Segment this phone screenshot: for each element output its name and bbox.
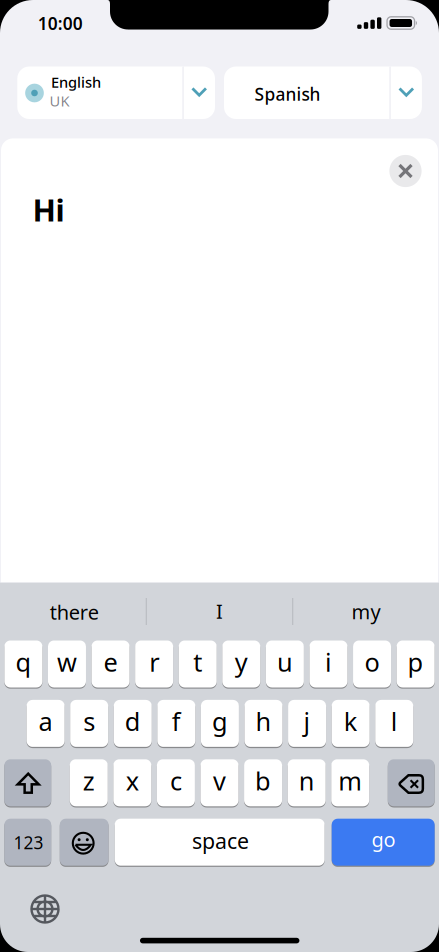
- staticText: my: [351, 598, 380, 625]
- button[interactable]: English: [0, 0, 439, 952]
- staticText: space: [192, 826, 249, 855]
- button[interactable]: d: [0, 0, 439, 952]
- staticText: z: [83, 764, 95, 797]
- staticText: h: [255, 704, 271, 738]
- button[interactable]: x: [0, 0, 439, 952]
- staticText: a: [39, 704, 53, 738]
- button[interactable]: w: [0, 0, 439, 952]
- staticText: t: [193, 645, 202, 679]
- staticText: p: [408, 645, 424, 679]
- staticText: b: [255, 764, 271, 797]
- staticText: w: [57, 645, 77, 679]
- staticText: d: [125, 704, 141, 738]
- button[interactable]: go: [0, 0, 439, 952]
- button[interactable]: g: [0, 0, 439, 952]
- staticText: q: [15, 645, 31, 679]
- button[interactable]: there: [0, 0, 439, 952]
- staticText: English: [51, 72, 101, 92]
- button[interactable]: 123: [0, 0, 439, 952]
- button[interactable]: e: [0, 0, 439, 952]
- button[interactable]: o: [0, 0, 439, 952]
- staticText: y: [235, 645, 248, 679]
- button[interactable]: h: [0, 0, 439, 952]
- button[interactable]: s: [0, 0, 439, 952]
- button[interactable]: c: [0, 0, 439, 952]
- staticText: o: [364, 645, 379, 679]
- button[interactable]: l: [0, 0, 439, 952]
- button[interactable]: Switch keyboard: [0, 0, 439, 952]
- staticText: UK: [49, 91, 69, 110]
- staticText: x: [126, 764, 139, 797]
- staticText: m: [338, 764, 362, 797]
- button[interactable]: u: [0, 0, 439, 952]
- staticText: u: [277, 645, 293, 679]
- staticText: go: [371, 826, 395, 853]
- button[interactable]: my: [0, 0, 439, 952]
- staticText: l: [391, 704, 398, 738]
- staticText: k: [344, 704, 358, 738]
- button[interactable]: I: [0, 0, 439, 952]
- button[interactable]: n: [0, 0, 439, 952]
- button[interactable]: Clear text: [0, 0, 439, 952]
- staticText: n: [299, 764, 315, 797]
- staticText: e: [104, 645, 118, 679]
- button[interactable]: y: [0, 0, 439, 952]
- button[interactable]: j: [0, 0, 439, 952]
- button[interactable]: z: [0, 0, 439, 952]
- button[interactable]: a: [0, 0, 439, 952]
- staticText: j: [304, 704, 311, 738]
- staticText: Hi: [32, 189, 64, 230]
- staticText: r: [149, 645, 159, 679]
- button[interactable]: Shift: [0, 0, 439, 952]
- button[interactable]: Emoji: [0, 0, 439, 952]
- staticText: 123: [14, 831, 44, 854]
- button[interactable]: i: [0, 0, 439, 952]
- button[interactable]: m: [0, 0, 439, 952]
- staticText: v: [213, 764, 226, 797]
- button[interactable]: space: [0, 0, 439, 952]
- staticText: f: [172, 704, 181, 738]
- staticText: c: [170, 764, 182, 797]
- staticText: there: [50, 599, 99, 625]
- button[interactable]: f: [0, 0, 439, 952]
- button[interactable]: Delete: [0, 0, 439, 952]
- staticText: g: [212, 704, 228, 738]
- button[interactable]: b: [0, 0, 439, 952]
- button[interactable]: v: [0, 0, 439, 952]
- staticText: Spanish: [255, 82, 321, 105]
- button[interactable]: Spanish: [0, 0, 439, 952]
- button[interactable]: r: [0, 0, 439, 952]
- staticText: s: [83, 704, 95, 738]
- button[interactable]: p: [0, 0, 439, 952]
- staticText: i: [325, 645, 332, 679]
- staticText: I: [216, 598, 223, 624]
- button[interactable]: t: [0, 0, 439, 952]
- button[interactable]: q: [0, 0, 439, 952]
- button[interactable]: k: [0, 0, 439, 952]
- staticText: 10:00: [38, 12, 83, 35]
